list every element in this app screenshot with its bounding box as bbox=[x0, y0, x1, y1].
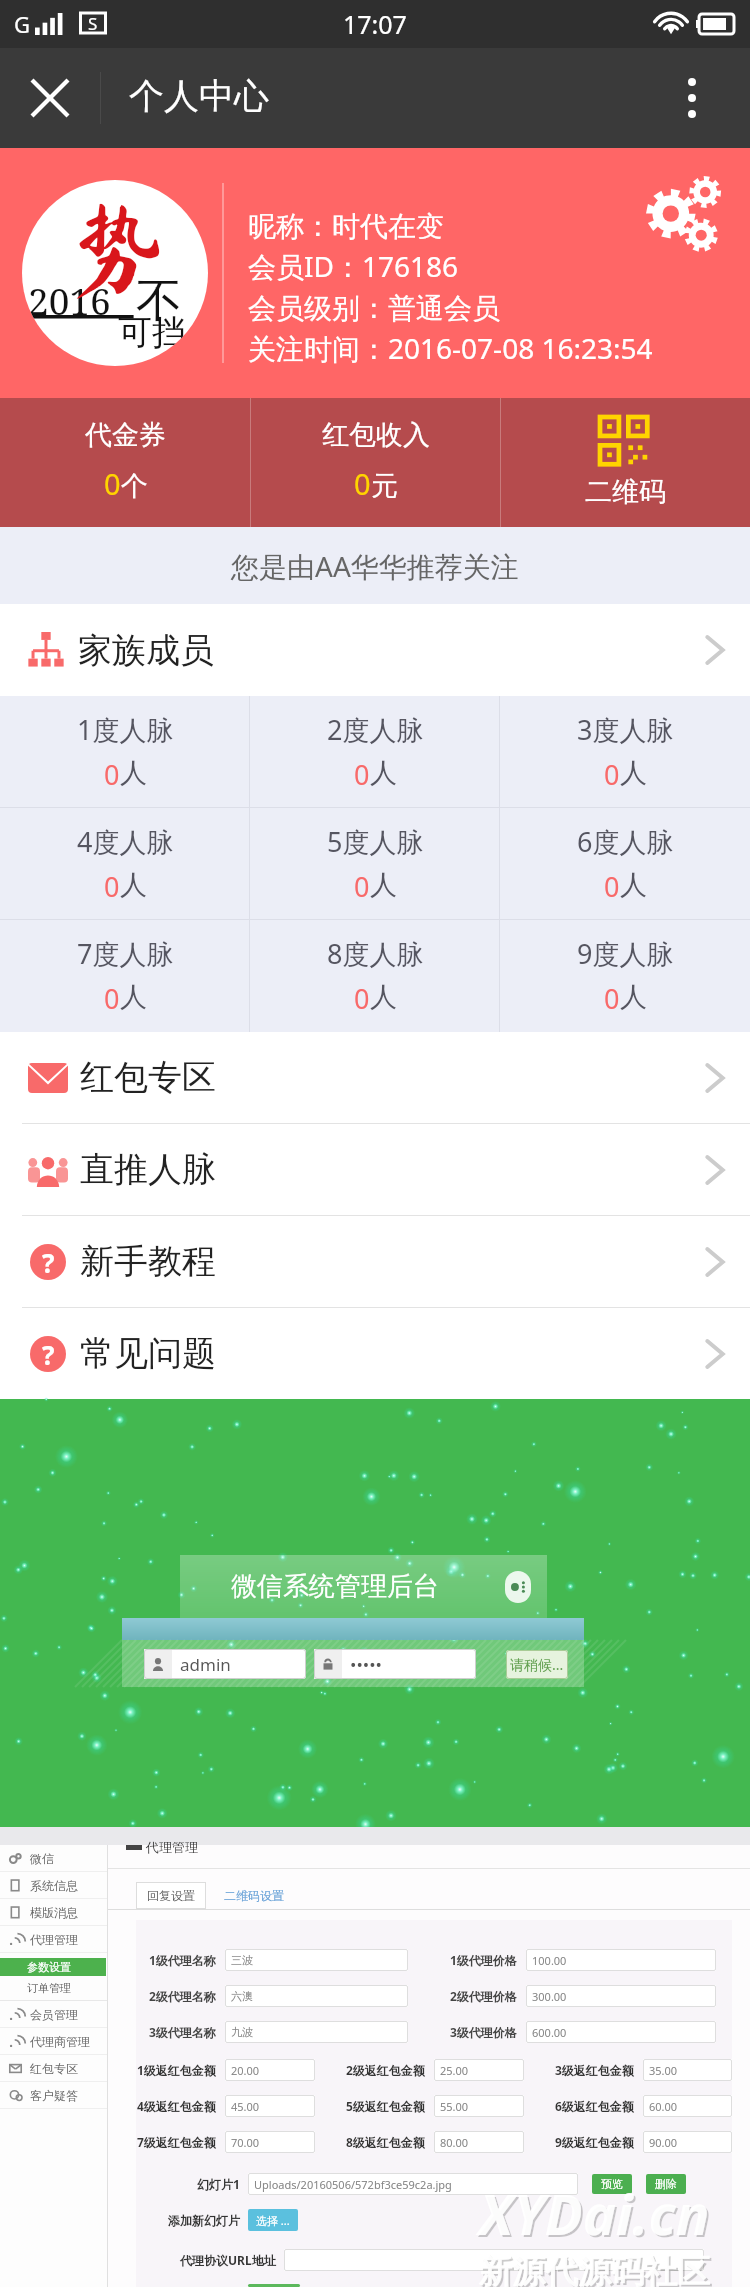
button[interactable]: 请稍候... bbox=[506, 1650, 568, 1679]
staticText: Uploads/20160506/572bf3ce59c2a.jpg bbox=[254, 2177, 452, 2192]
staticText: 客户疑答 bbox=[30, 2088, 78, 2103]
staticText: 2016 bbox=[28, 275, 111, 325]
staticText: 家族成员 bbox=[78, 629, 214, 672]
staticText: ? bbox=[42, 1245, 55, 1280]
staticText: XYDai.cn bbox=[479, 2175, 710, 2251]
button[interactable]: 家族成员 bbox=[0, 604, 750, 696]
staticText: 0 bbox=[604, 868, 620, 905]
staticText: 1级代理价格 bbox=[450, 1952, 517, 1968]
button[interactable]: 2度人脉 bbox=[250, 696, 500, 808]
staticText: ? bbox=[42, 1337, 55, 1372]
button[interactable]: More options bbox=[654, 60, 730, 136]
staticText: 4度人脉 bbox=[77, 823, 174, 860]
staticText: 300.00 bbox=[532, 1989, 567, 2004]
staticText: 6级返红包金额 bbox=[555, 2098, 634, 2114]
staticText: admin bbox=[180, 1653, 231, 1676]
button[interactable]: ? bbox=[0, 1216, 750, 1307]
button[interactable]: 参数设置 bbox=[0, 1958, 106, 1976]
button[interactable]: 红包收入 bbox=[251, 398, 500, 527]
staticText: 0 bbox=[104, 756, 120, 793]
button[interactable]: 二维码 bbox=[501, 398, 750, 527]
staticText: 25.00 bbox=[440, 2063, 469, 2078]
staticText: 8度人脉 bbox=[327, 935, 424, 972]
button[interactable]: 3度人脉 bbox=[500, 696, 750, 808]
button[interactable]: 直推人脉 bbox=[0, 1124, 750, 1215]
button[interactable]: 5度人脉 bbox=[250, 808, 500, 920]
staticText: 添加新幻灯片 bbox=[168, 2213, 240, 2228]
staticText: 5度人脉 bbox=[327, 823, 424, 860]
staticText: 17:07 bbox=[343, 7, 407, 41]
staticText: 微信系统管理后台 bbox=[231, 1570, 439, 1603]
staticText: 选择 ... bbox=[256, 2213, 290, 2228]
staticText: 常见问题 bbox=[80, 1332, 216, 1375]
staticText: 2级代理价格 bbox=[450, 1988, 517, 2004]
staticText: S bbox=[88, 12, 98, 35]
staticText: 人 bbox=[120, 756, 147, 790]
staticText: 6度人脉 bbox=[577, 823, 674, 860]
staticText: 预览 bbox=[601, 2177, 623, 2191]
staticText: 会员ID：176186 bbox=[248, 246, 459, 288]
staticText: 3级返红包金额 bbox=[555, 2062, 634, 2078]
staticText: XYDai.cn bbox=[481, 2177, 712, 2253]
button[interactable]: 1度人脉 bbox=[0, 696, 250, 808]
staticText: 7度人脉 bbox=[77, 935, 174, 972]
button[interactable]: 8度人脉 bbox=[250, 920, 500, 1032]
button[interactable]: 9度人脉 bbox=[500, 920, 750, 1032]
staticText: 600.00 bbox=[532, 2025, 567, 2040]
staticText: 3级代理名称 bbox=[149, 2024, 216, 2040]
button[interactable]: 6度人脉 bbox=[500, 808, 750, 920]
staticText: 45.00 bbox=[231, 2099, 260, 2114]
staticText: 4级返红包金额 bbox=[137, 2098, 216, 2114]
staticText: 100.00 bbox=[532, 1953, 567, 1968]
staticText: 个人中心 bbox=[129, 74, 269, 118]
staticText: 代理协议URL地址 bbox=[180, 2252, 276, 2268]
staticText: 代理管理 bbox=[30, 1932, 78, 1947]
button[interactable]: 红包专区 bbox=[0, 1032, 750, 1123]
staticText: 1级返红包金额 bbox=[137, 2062, 216, 2078]
staticText: 80.00 bbox=[440, 2135, 469, 2150]
button[interactable]: ? bbox=[0, 1308, 750, 1399]
staticText: 九波 bbox=[231, 2025, 253, 2039]
staticText: 人 bbox=[120, 980, 147, 1014]
staticText: 红包专区 bbox=[30, 2061, 78, 2076]
staticText: 六澳 bbox=[231, 1989, 253, 2003]
button[interactable]: Close bbox=[0, 48, 100, 148]
button[interactable]: 4度人脉 bbox=[0, 808, 250, 920]
button[interactable]: Settings bbox=[642, 172, 722, 252]
staticText: 订单管理 bbox=[27, 1981, 71, 1995]
staticText: 90.00 bbox=[649, 2135, 678, 2150]
staticText: 您是由AA华华推荐关注 bbox=[231, 547, 519, 585]
staticText: 微信 bbox=[30, 1851, 54, 1866]
staticText: 可挡 bbox=[118, 311, 186, 354]
staticText: 不 bbox=[136, 272, 182, 330]
staticText: 60.00 bbox=[649, 2099, 678, 2114]
staticText: 会员管理 bbox=[30, 2007, 78, 2022]
button[interactable]: Avatar bbox=[22, 180, 208, 366]
staticText: 请稍候... bbox=[510, 1655, 564, 1674]
button[interactable]: 7度人脉 bbox=[0, 920, 250, 1032]
staticText: 0 bbox=[354, 868, 370, 905]
staticText: 9级返红包金额 bbox=[555, 2134, 634, 2150]
staticText: 昵称：时代在变 bbox=[248, 206, 444, 246]
staticText: 代理商管理 bbox=[30, 2034, 90, 2049]
staticText: 0 bbox=[104, 464, 121, 503]
staticText: 幻灯片1 bbox=[197, 2176, 240, 2192]
button[interactable]: 代金券 bbox=[0, 398, 250, 527]
staticText: 删除 bbox=[655, 2177, 677, 2191]
staticText: 三波 bbox=[231, 1953, 253, 1967]
staticText: 1级代理名称 bbox=[149, 1952, 216, 1968]
staticText: 人 bbox=[620, 868, 647, 902]
staticText: 55.00 bbox=[440, 2099, 469, 2114]
staticText: 会员级别：普通会员 bbox=[248, 288, 500, 328]
staticText: 新源代源码社区 bbox=[481, 2253, 712, 2287]
staticText: 0 bbox=[604, 756, 620, 793]
staticText: 红包收入 bbox=[322, 418, 430, 452]
staticText: 0 bbox=[104, 868, 120, 905]
staticText: 人 bbox=[620, 980, 647, 1014]
staticText: ••••• bbox=[350, 1653, 382, 1676]
staticText: 二维码设置 bbox=[224, 1888, 284, 1903]
staticText: 20.00 bbox=[231, 2063, 260, 2078]
staticText: 参数设置 bbox=[27, 1960, 71, 1974]
staticText: 元 bbox=[371, 469, 398, 503]
